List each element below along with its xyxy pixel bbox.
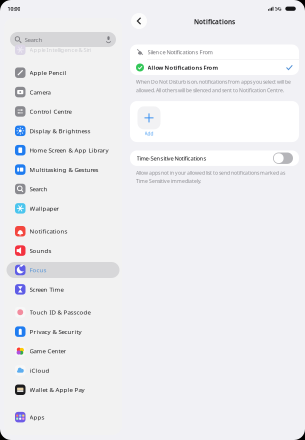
button[interactable]: Apple Pencil [6,65,119,81]
button[interactable]: Focus [6,262,119,278]
staticText: Home Screen & App Library [29,146,108,154]
button[interactable]: Search [6,181,119,197]
button[interactable]: Time-Sensitive Notifications [273,152,293,164]
staticText: Control Centre [29,107,71,115]
staticText: Allow apps not in your allowed list to s… [136,169,285,185]
staticText: Display & Brightness [29,127,90,135]
button[interactable]: Camera [6,84,119,100]
staticText: Game Center [29,347,66,355]
button[interactable]: Silence Notifications From [130,44,299,59]
button[interactable]: Touch ID & Passcode [6,304,119,320]
staticText: Camera [29,88,50,96]
button[interactable]: Control Centre [6,103,119,119]
staticText: Time-Sensitive Notifications [136,154,206,162]
staticText: Add [144,130,153,137]
staticText: Wallet & Apple Pay [29,386,84,394]
staticText: 10:00 [7,5,20,12]
button[interactable]: Privacy & Security [6,324,119,340]
staticText: Apple Intelligence & Siri [29,46,90,53]
staticText: Search [24,35,42,43]
button[interactable]: Add [135,107,162,137]
staticText: Apple Pencil [29,69,66,77]
staticText: Apps [29,413,44,421]
staticText: Allow Notifications From [147,64,218,71]
button[interactable]: Multitasking & Gestures [6,162,119,178]
staticText: Silence Notifications From [147,48,212,56]
button[interactable]: Home Screen & App Library [6,142,119,158]
staticText: 5G [275,5,282,12]
staticText: iCloud [29,366,49,374]
button[interactable]: Back [131,13,147,29]
staticText: Multitasking & Gestures [29,166,98,174]
button[interactable]: Wallpaper [6,200,119,216]
staticText: Notifications [29,227,67,235]
button[interactable]: Sounds [6,243,119,259]
button[interactable]: Screen Time [6,281,119,297]
staticText: Search [29,185,47,193]
button[interactable]: iCloud [6,362,119,378]
staticText: Screen Time [29,285,63,293]
staticText: When Do Not Disturb is on, notifications… [136,78,291,94]
button[interactable]: Display & Brightness [6,123,119,139]
staticText: Touch ID & Passcode [29,308,90,316]
button[interactable]: Notifications [6,223,119,239]
button[interactable]: Game Center [6,343,119,359]
staticText: Wallpaper [29,204,59,212]
staticText: Privacy & Security [29,328,81,336]
staticText: Sounds [29,247,51,255]
button[interactable]: Allow Notifications From [130,60,299,75]
button[interactable]: Apps [6,409,119,425]
staticText: Notifications [194,17,235,26]
button[interactable]: Wallet & Apple Pay [6,382,119,398]
staticText: Focus [29,266,46,274]
